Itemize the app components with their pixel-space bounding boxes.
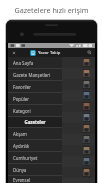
button[interactable] xyxy=(8,79,95,90)
staticText: Gazetelere hızlı erişim xyxy=(14,5,89,15)
staticText: Kategori xyxy=(13,108,31,114)
button[interactable]: Popüler xyxy=(8,93,62,104)
staticText: Cumhuriyet xyxy=(13,155,38,161)
button[interactable] xyxy=(8,145,95,156)
staticText: Ana Sayfa xyxy=(13,60,34,66)
button[interactable]: Ara xyxy=(84,48,95,57)
button[interactable]: Favoriler xyxy=(8,81,62,92)
button[interactable] xyxy=(8,156,95,167)
button[interactable]: Akşam xyxy=(8,128,62,139)
staticText: Favoriler xyxy=(13,84,31,90)
button[interactable] xyxy=(8,167,95,178)
button[interactable]: Yazar Takip xyxy=(19,48,84,57)
button[interactable] xyxy=(8,57,95,68)
staticText: Popüler xyxy=(13,96,30,102)
button[interactable]: Cumhuriyet xyxy=(8,152,62,163)
button[interactable]: Evrensel xyxy=(8,176,62,183)
button[interactable] xyxy=(8,101,95,112)
staticText: Akşam xyxy=(13,131,27,137)
button[interactable] xyxy=(8,90,95,101)
button[interactable]: Ana Sayfa xyxy=(8,57,62,68)
staticText: Yazar Takip xyxy=(38,50,61,56)
button[interactable]: Kapat xyxy=(8,48,19,57)
staticText: Gazete Manşetleri xyxy=(13,72,51,78)
button[interactable]: Aydınlık xyxy=(8,140,62,151)
button[interactable]: Dünya xyxy=(8,164,62,175)
staticText: Aydınlık xyxy=(13,143,30,149)
button[interactable] xyxy=(8,68,95,79)
staticText: Dünya xyxy=(13,167,27,173)
staticText: Gazeteler xyxy=(24,119,46,125)
button[interactable]: Kategori xyxy=(8,105,62,116)
staticText: Evrensel xyxy=(13,177,31,183)
button[interactable] xyxy=(8,134,95,145)
button[interactable] xyxy=(8,123,95,134)
button[interactable] xyxy=(8,112,95,123)
button[interactable]: Gazete Manşetleri xyxy=(8,69,62,80)
